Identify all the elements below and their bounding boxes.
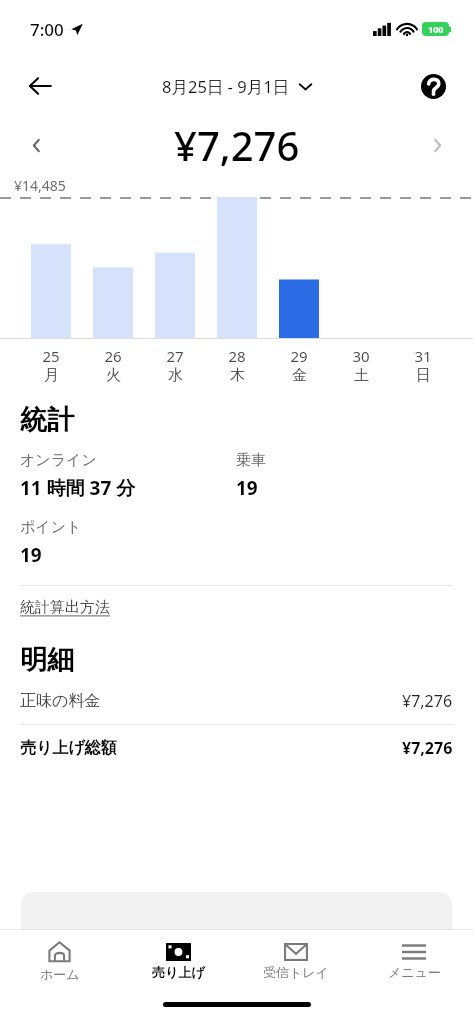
button[interactable]: メニュー [355, 930, 473, 992]
button[interactable]: 8月25日 - 9月1日 [162, 75, 312, 98]
staticText: ¥7,276 [402, 690, 453, 712]
staticText: 受信トレイ [263, 964, 329, 980]
staticText: 28 [228, 346, 246, 366]
staticText: 19 [20, 542, 42, 568]
staticText: 11 時間 37 分 [20, 475, 136, 501]
staticText: 31 [414, 346, 432, 366]
staticText: ¥14,485 [14, 176, 66, 195]
staticText: 乗車 [236, 451, 266, 470]
staticText: 売り上げ [152, 964, 205, 980]
staticText: 統計算出方法 [20, 598, 110, 617]
staticText: 金 [292, 366, 307, 385]
staticText: 月 [44, 366, 59, 385]
staticText: 日 [416, 366, 431, 385]
staticText: 30 [352, 346, 370, 366]
staticText: 19 [236, 475, 258, 501]
button[interactable]: ホーム [0, 930, 119, 992]
staticText: 100 [428, 23, 444, 35]
staticText: 27 [166, 346, 184, 366]
staticText: 水 [168, 366, 183, 385]
staticText: 木 [230, 366, 245, 385]
button[interactable]: Back [16, 62, 64, 110]
staticText: 売り上げ総額 [20, 738, 117, 758]
staticText: ホーム [40, 966, 80, 982]
button[interactable]: 統計算出方法 [20, 598, 110, 617]
staticText: オンライン [20, 451, 97, 470]
staticText: ¥7,276 [402, 737, 453, 759]
button[interactable]: Help [411, 64, 455, 108]
staticText: 火 [106, 366, 121, 385]
staticText: 26 [104, 346, 122, 366]
staticText: 8月25日 - 9月1日 [162, 75, 290, 98]
staticText: 正味の料金 [20, 691, 101, 711]
staticText: 統計 [20, 403, 74, 437]
staticText: 29 [290, 346, 308, 366]
staticText: 7:00 [30, 18, 64, 41]
button[interactable]: Next week [417, 125, 457, 165]
staticText: 土 [354, 366, 369, 385]
staticText: 25 [42, 346, 60, 366]
button[interactable]: 売り上げ [119, 930, 237, 992]
button[interactable]: 受信トレイ [237, 930, 355, 992]
staticText: ポイント [20, 518, 82, 537]
staticText: ¥7,276 [174, 118, 300, 172]
staticText: 明細 [20, 643, 74, 677]
button[interactable]: Previous week [16, 125, 56, 165]
staticText: メニュー [388, 964, 441, 980]
